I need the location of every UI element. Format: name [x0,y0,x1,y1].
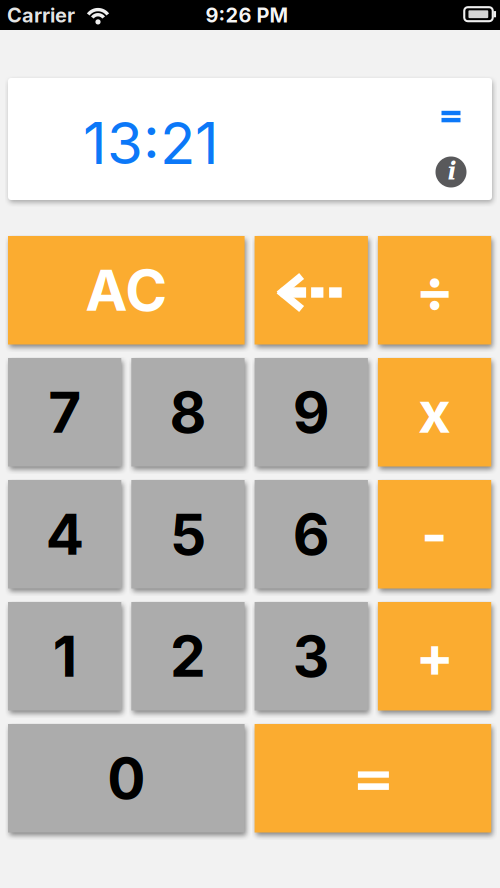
button[interactable]: 9 [255,358,368,466]
staticText: 2 [170,622,206,691]
staticText: 9 [293,378,330,447]
staticText: Carrier [7,3,75,27]
staticText: 4 [46,500,84,569]
staticText: 3 [293,622,330,691]
button[interactable]: 7 [8,358,121,466]
button[interactable]: 6 [255,480,368,588]
button[interactable]: - [378,480,491,588]
button[interactable]: Equals [431,96,471,136]
button[interactable]: ÷ [378,236,491,344]
button[interactable]: AC [8,236,245,344]
button[interactable]: 5 [131,480,245,588]
button[interactable]: 0 [8,724,245,832]
staticText: 8 [169,378,206,447]
button[interactable]: Info [435,156,466,187]
staticText: - [421,500,448,569]
button[interactable]: 2 [131,602,245,710]
staticText: ÷ [415,256,453,325]
button[interactable]: 8 [131,358,245,466]
staticText: x [418,378,451,447]
staticText: i [447,157,456,185]
staticText: AC [85,256,167,325]
button[interactable]: 4 [8,480,121,588]
button[interactable]: x [378,358,491,466]
staticText: 13:21 [83,108,219,178]
staticText: 1 [53,622,77,691]
staticText: 9:26 PM [205,3,288,27]
staticText: 7 [48,378,81,447]
staticText: 6 [293,500,330,569]
staticText: 5 [170,500,206,569]
staticText: + [415,622,453,691]
button[interactable]: 1 [8,602,121,710]
button[interactable]: 3 [255,602,368,710]
button[interactable]: + [378,602,491,710]
button[interactable]: Equals [255,724,491,832]
button[interactable]: Backspace [255,236,368,344]
staticText: 0 [107,744,145,813]
